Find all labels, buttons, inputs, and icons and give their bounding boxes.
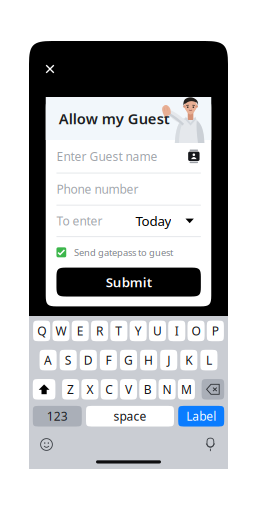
staticText: Enter Guest name — [56, 148, 157, 164]
button[interactable]: R — [91, 321, 108, 341]
button[interactable]: C — [101, 379, 118, 400]
staticText: Label — [186, 408, 216, 424]
button[interactable]: M — [178, 379, 195, 400]
staticText: F — [105, 352, 111, 368]
staticText: I — [175, 323, 179, 339]
button[interactable]: I — [168, 321, 185, 341]
button[interactable]: S — [60, 350, 77, 370]
staticText: D — [84, 352, 93, 368]
staticText: M — [181, 381, 192, 397]
staticText: Send gatepass to guest — [74, 246, 173, 259]
staticText: P — [212, 323, 219, 339]
button[interactable]: Pick from contacts — [187, 149, 201, 163]
staticText: 123 — [47, 408, 68, 424]
button[interactable]: space — [86, 406, 174, 426]
button[interactable]: B — [139, 379, 156, 400]
staticText: T — [115, 323, 122, 339]
button[interactable]: U — [149, 321, 166, 341]
button[interactable]: Today — [135, 212, 201, 230]
staticText: Y — [135, 323, 142, 339]
button[interactable]: Q — [33, 321, 50, 341]
button[interactable]: 123 — [33, 406, 82, 426]
staticText: Today — [135, 212, 171, 230]
button[interactable]: V — [120, 379, 137, 400]
button[interactable]: J — [160, 350, 177, 370]
staticText: L — [206, 352, 212, 368]
staticText: V — [125, 381, 132, 397]
staticText: Q — [37, 323, 46, 339]
button[interactable]: Emoji — [36, 434, 56, 454]
button[interactable]: T — [110, 321, 127, 341]
button[interactable]: O — [187, 321, 205, 341]
button[interactable]: Close — [38, 57, 62, 81]
button[interactable]: Delete — [202, 379, 224, 400]
button[interactable]: Dictation — [200, 434, 220, 454]
staticText: A — [44, 352, 52, 368]
button[interactable]: E — [72, 321, 89, 341]
button[interactable]: K — [180, 350, 197, 370]
staticText: G — [124, 352, 133, 368]
staticText: H — [144, 352, 153, 368]
button[interactable]: Submit — [56, 268, 201, 296]
button[interactable]: Shift — [33, 379, 55, 400]
staticText: X — [86, 381, 93, 397]
staticText: To enter — [56, 213, 102, 229]
button[interactable]: N — [159, 379, 176, 400]
button[interactable]: Z — [62, 379, 79, 400]
button[interactable]: Y — [130, 321, 147, 341]
button[interactable]: Label — [178, 406, 224, 426]
button[interactable]: P — [207, 321, 224, 341]
button[interactable]: W — [52, 321, 69, 341]
staticText: S — [65, 352, 72, 368]
staticText: space — [113, 408, 146, 424]
staticText: W — [55, 323, 66, 339]
staticText: E — [77, 323, 84, 339]
button[interactable]: L — [200, 350, 217, 370]
staticText: Z — [67, 381, 74, 397]
button[interactable]: X — [81, 379, 98, 400]
staticText: B — [144, 381, 152, 397]
staticText: K — [185, 352, 192, 368]
staticText: C — [105, 381, 113, 397]
staticText: Phone number — [56, 181, 138, 197]
button[interactable]: Send gatepass to guest — [56, 237, 201, 268]
staticText: O — [192, 323, 201, 339]
button[interactable]: G — [120, 350, 137, 370]
button[interactable]: A — [40, 350, 57, 370]
button[interactable]: H — [140, 350, 157, 370]
staticText: R — [96, 323, 103, 339]
staticText: Allow my Guest — [59, 109, 170, 128]
staticText: U — [153, 323, 162, 339]
staticText: Submit — [106, 273, 152, 291]
staticText: N — [163, 381, 172, 397]
button[interactable]: F — [100, 350, 117, 370]
staticText: J — [167, 352, 170, 368]
button[interactable]: D — [80, 350, 97, 370]
